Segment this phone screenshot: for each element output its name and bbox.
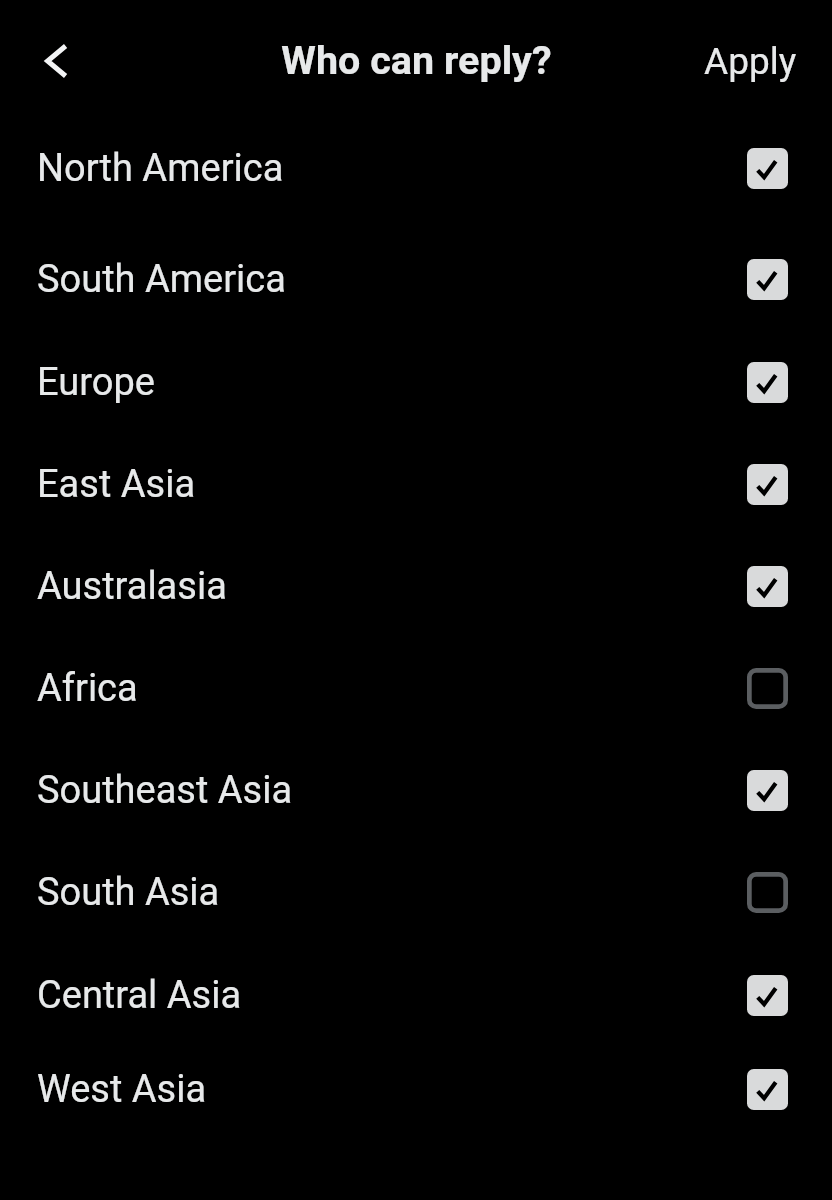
staticText: Europe [37,360,155,405]
button[interactable]: Southeast Asia [0,739,832,842]
staticText: Southeast Asia [37,768,293,813]
staticText: North America [37,146,284,191]
button[interactable]: West Asia [0,1038,832,1141]
button[interactable]: South America [0,228,832,331]
staticText: Who can reply? [281,37,552,83]
staticText: Australasia [37,564,227,609]
button[interactable]: Africa [0,637,832,740]
button[interactable]: Australasia [0,535,832,638]
staticText: East Asia [37,462,196,507]
staticText: West Asia [37,1067,207,1112]
button[interactable]: Europe [0,331,832,434]
staticText: South Asia [37,870,220,915]
button[interactable]: Central Asia [0,944,832,1047]
button[interactable]: North America [0,117,832,220]
button[interactable]: South Asia [0,841,832,944]
staticText: Apply [704,40,797,83]
button[interactable]: East Asia [0,433,832,536]
staticText: Africa [37,666,138,711]
staticText: Central Asia [37,973,242,1018]
button[interactable]: Apply [680,23,832,99]
button[interactable]: Back [22,26,92,96]
staticText: South America [37,257,286,302]
